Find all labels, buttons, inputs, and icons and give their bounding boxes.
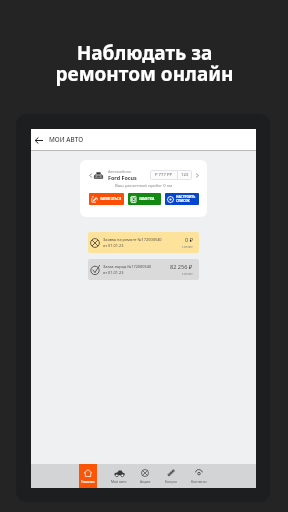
button[interactable]: Previous car: [88, 173, 93, 178]
staticText: МОИ АВТО: [49, 135, 84, 144]
button[interactable]: Next car: [195, 173, 200, 178]
button[interactable]: ЗАМЕТКА: [128, 193, 161, 205]
staticText: ЗАПИСАТЬСЯ: [100, 197, 122, 201]
button[interactable]: Заявка на ремонт №172000540: [88, 232, 199, 253]
button[interactable]: НАСТРОИТЬ СПИСОК: [165, 193, 199, 205]
staticText: Бонусы: [165, 479, 178, 484]
staticText: Ваш расчетный пробег 0 км: [115, 183, 173, 189]
staticText: к оплате: [182, 272, 193, 276]
staticText: Ford Focus: [108, 174, 137, 181]
staticText: 123: [181, 172, 189, 178]
button[interactable]: ЗАПИСАТЬСЯ: [89, 193, 124, 205]
button[interactable]: Previous car: [80, 160, 207, 217]
staticText: Р 777 РР: [155, 172, 172, 178]
staticText: Автомобиль: [108, 169, 132, 174]
staticText: 0 ₽: [185, 236, 193, 244]
staticText: НАСТРОИТЬ СПИСОК: [176, 195, 196, 203]
button[interactable]: Заказ-наряд №172000540: [88, 259, 199, 280]
staticText: ЗАМЕТКА: [139, 197, 155, 201]
button[interactable]: Контакты: [187, 464, 211, 488]
staticText: 82 256 ₽: [170, 263, 193, 271]
button[interactable]: Мой авто: [107, 464, 131, 488]
staticText: Наблюдать за ремонтом онлайн: [55, 40, 234, 87]
staticText: Главная: [81, 479, 95, 484]
staticText: к оплате: [182, 245, 193, 249]
button[interactable]: Бонусы: [159, 464, 183, 488]
staticText: Акции: [140, 479, 151, 484]
staticText: Заявка на ремонт №172000540: [103, 237, 162, 242]
staticText: Заказ-наряд №172000540: [103, 264, 152, 269]
staticText: Мой авто: [111, 479, 127, 484]
button[interactable]: Главная: [79, 464, 97, 488]
staticText: от 01.01.23: [103, 270, 124, 275]
button[interactable]: Back: [33, 134, 45, 146]
staticText: от 01.01.23: [103, 243, 124, 248]
staticText: Контакты: [191, 479, 207, 484]
button[interactable]: Акции: [133, 464, 157, 488]
